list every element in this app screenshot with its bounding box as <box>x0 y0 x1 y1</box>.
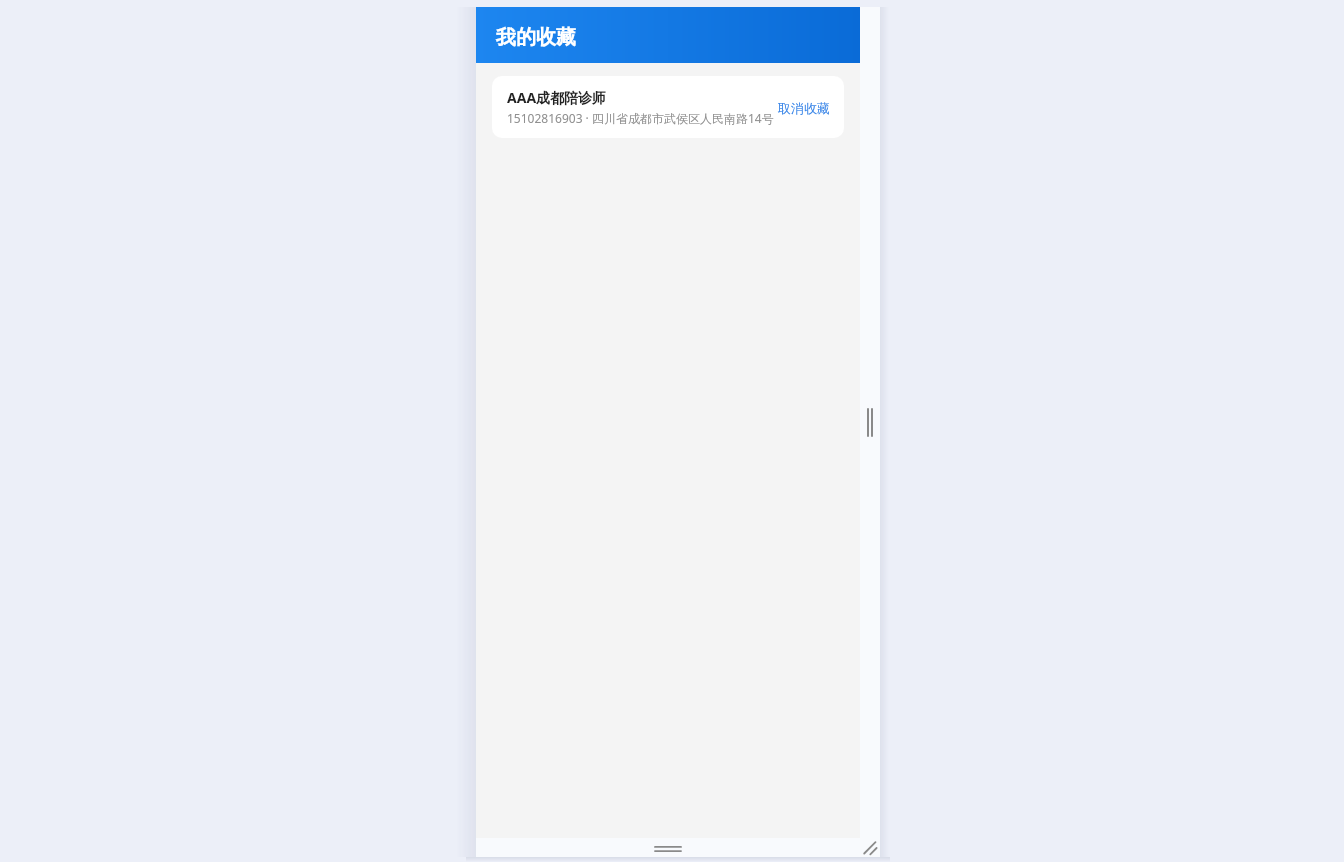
button[interactable]: AAA成都陪诊师 <box>492 76 844 138</box>
staticText: 我的收藏 <box>496 25 576 50</box>
staticText: 取消收藏 <box>778 100 830 116</box>
button[interactable]: 取消收藏 <box>772 94 836 122</box>
staticText: AAA成都陪诊师 <box>507 88 607 107</box>
staticText: 15102816903 · 四川省成都市武侯区人民南路14号 <box>507 110 774 126</box>
